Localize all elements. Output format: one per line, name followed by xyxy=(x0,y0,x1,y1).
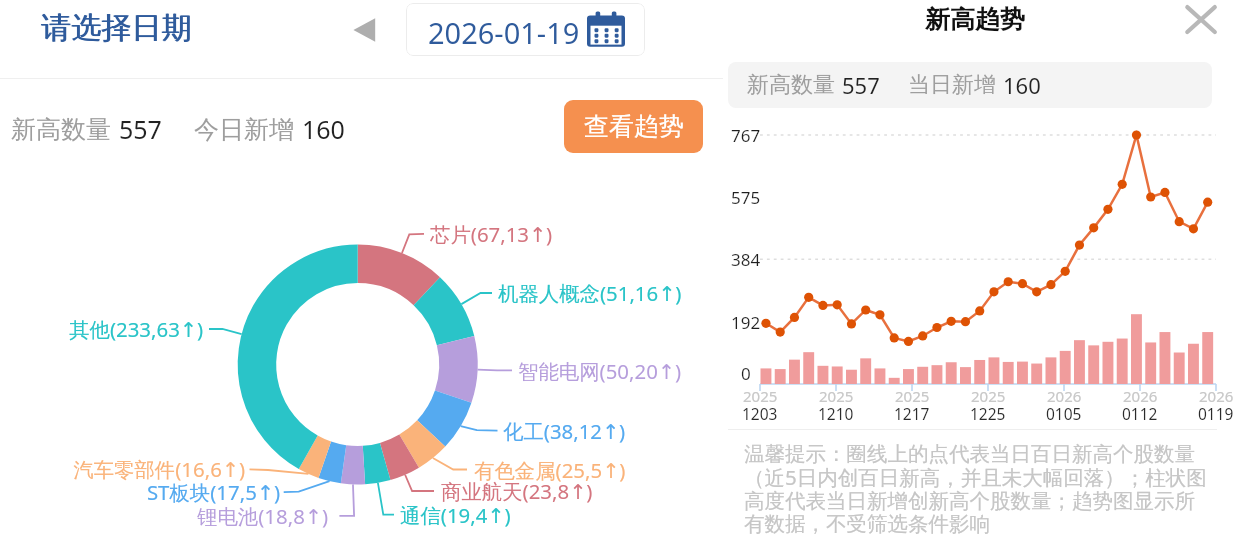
staticText: 新高数量 xyxy=(747,71,835,99)
staticText: 2026 xyxy=(1123,386,1158,406)
staticText: 575 xyxy=(731,186,761,209)
button[interactable]: 查看趋势 xyxy=(564,100,703,153)
staticText: 1225 xyxy=(970,403,1006,424)
staticText: 2025 xyxy=(895,386,930,406)
staticText: 有色金属(25,5↑) xyxy=(474,456,626,484)
staticText: 商业航天(23,8↑) xyxy=(441,477,593,505)
staticText: 767 xyxy=(731,124,761,147)
staticText: ST板块(17,5↑) xyxy=(0,478,280,506)
staticText: 384 xyxy=(731,248,761,271)
staticText: 其他(233,63↑) xyxy=(0,315,203,343)
staticText: 0 xyxy=(741,362,751,385)
staticText: 新高趋势 xyxy=(925,4,1025,35)
staticText: 新高数量 xyxy=(11,114,111,145)
staticText: 1210 xyxy=(818,403,854,424)
staticText: 机器人概念(51,16↑) xyxy=(498,279,682,307)
staticText: 请选择日期 xyxy=(41,9,191,47)
staticText: 557 xyxy=(842,70,880,100)
staticText: 192 xyxy=(731,311,761,334)
staticText: 557 xyxy=(119,112,162,146)
staticText: 温馨提示：圈线上的点代表当日百日新高个股数量 （近5日内创百日新高，并且未大幅回… xyxy=(744,441,1207,538)
staticText: 160 xyxy=(302,112,345,146)
staticText: 0105 xyxy=(1046,403,1082,424)
staticText: 1217 xyxy=(894,403,930,424)
staticText: 芯片(67,13↑) xyxy=(430,220,553,248)
staticText: 2025 xyxy=(819,386,854,406)
staticText: 2026 xyxy=(1047,386,1082,406)
button[interactable]: 2026-01-19 xyxy=(406,3,645,56)
staticText: 2025 xyxy=(971,386,1006,406)
staticText: 2026 xyxy=(1199,386,1234,406)
staticText: 0119 xyxy=(1198,403,1234,424)
button[interactable]: Previous day xyxy=(350,12,386,48)
staticText: 查看趋势 xyxy=(584,111,684,142)
button[interactable]: Close xyxy=(1179,0,1223,40)
staticText: 2026-01-19 xyxy=(428,13,580,52)
staticText: 智能电网(50,20↑) xyxy=(518,357,682,385)
staticText: 化工(38,12↑) xyxy=(503,417,626,445)
staticText: 当日新增 xyxy=(908,71,996,99)
staticText: 1203 xyxy=(742,403,778,424)
staticText: 160 xyxy=(1003,70,1041,100)
staticText: 通信(19,4↑) xyxy=(400,501,511,529)
staticText: 汽车零部件(16,6↑) xyxy=(0,455,245,483)
staticText: 今日新增 xyxy=(194,114,294,145)
staticText: 锂电池(18,8↑) xyxy=(0,502,328,530)
staticText: 0112 xyxy=(1122,403,1158,424)
staticText: 请选择日期 xyxy=(42,9,192,47)
staticText: 2025 xyxy=(743,386,778,406)
